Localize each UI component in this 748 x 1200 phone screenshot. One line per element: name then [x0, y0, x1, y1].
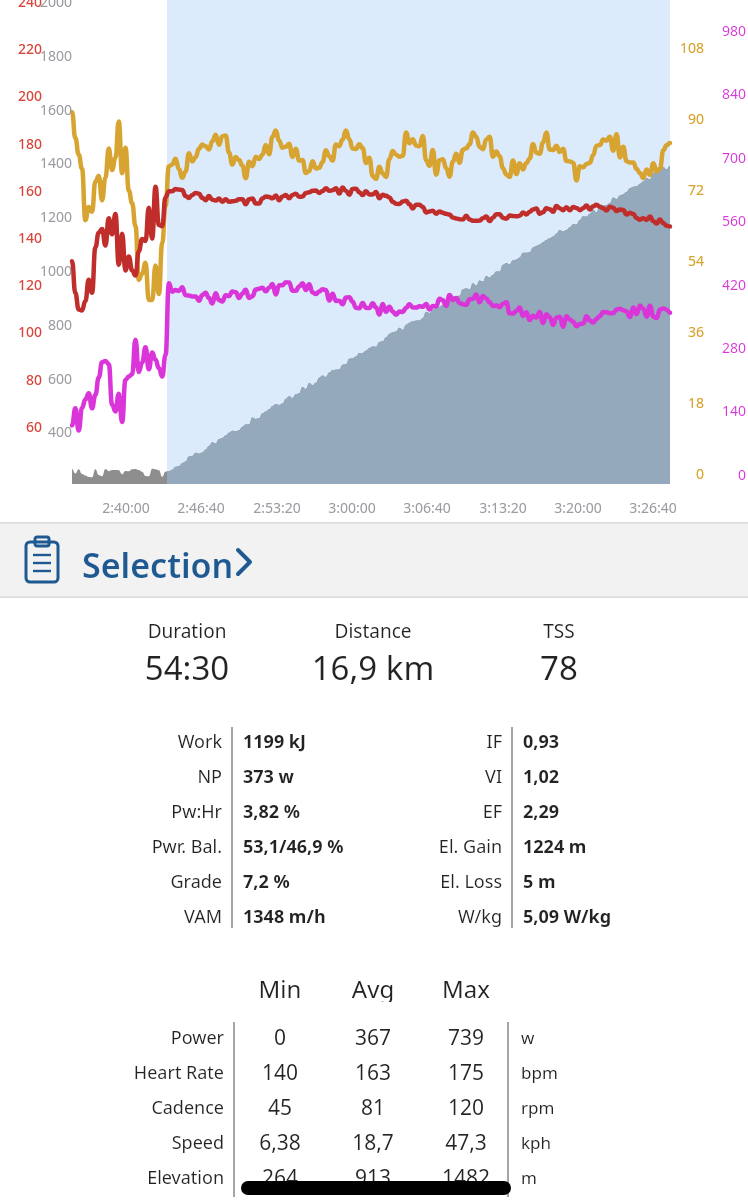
staticText: 200 [4, 86, 42, 106]
staticText: 980 [706, 21, 746, 41]
staticText: Elevation [60, 1165, 224, 1193]
staticText: 2,29 [523, 799, 560, 824]
staticText: Pwr. Bal. [80, 834, 222, 860]
staticText: Cadence [60, 1095, 224, 1123]
staticText: 3:20:00 [538, 498, 618, 518]
staticText: 0 [230, 1023, 330, 1053]
staticText: 140 [4, 228, 42, 248]
staticText: 1348 m/h [243, 904, 326, 929]
staticText: 54:30 [77, 645, 297, 691]
staticText: 3:06:40 [387, 498, 467, 518]
staticText: Min [220, 972, 340, 1002]
staticText: 140 [230, 1058, 330, 1088]
staticText: 18 [672, 393, 704, 413]
staticText: El. Gain [370, 834, 502, 860]
staticText: 180 [4, 134, 42, 154]
staticText: 373 w [243, 764, 294, 789]
staticText: VI [370, 764, 502, 790]
staticText: 739 [416, 1023, 516, 1053]
staticText: 2000 [30, 0, 72, 12]
staticText: 240 [4, 0, 42, 12]
staticText: Max [406, 972, 526, 1002]
staticText: TSS [449, 618, 669, 644]
staticText: Heart Rate [60, 1060, 224, 1088]
staticText: 16,9 km [263, 645, 483, 691]
staticText: m [521, 1166, 537, 1189]
staticText: 0 [672, 464, 704, 484]
staticText: 2:53:20 [237, 498, 317, 518]
staticText: 81 [323, 1093, 423, 1123]
staticText: 160 [4, 181, 42, 201]
staticText: 175 [416, 1058, 516, 1088]
staticText: El. Loss [370, 869, 502, 895]
staticText: 100 [4, 322, 42, 342]
staticText: 78 [449, 645, 669, 691]
staticText: 400 [30, 422, 72, 442]
staticText: 1224 m [523, 834, 587, 859]
staticText: 108 [672, 38, 704, 58]
staticText: 0,93 [523, 729, 560, 754]
staticText: 220 [4, 39, 42, 59]
staticText: 60 [4, 417, 42, 437]
staticText: IF [370, 729, 502, 755]
staticText: Avg [313, 972, 433, 1002]
staticText: 53,1/46,9 % [243, 834, 344, 859]
staticText: 600 [30, 369, 72, 389]
staticText: 140 [706, 401, 746, 421]
staticText: 54 [672, 251, 704, 271]
staticText: 700 [706, 148, 746, 168]
staticText: 120 [4, 275, 42, 295]
staticText: kph [521, 1131, 552, 1154]
staticText: 90 [672, 109, 704, 129]
staticText: NP [80, 764, 222, 790]
staticText: Power [60, 1025, 224, 1053]
staticText: 3:00:00 [312, 498, 392, 518]
staticText: 1600 [30, 100, 72, 120]
staticText: 5,09 W/kg [523, 904, 612, 929]
staticText: 1000 [30, 261, 72, 281]
staticText: 5 m [523, 869, 556, 894]
staticText: Selection [82, 542, 234, 588]
staticText: 264 [230, 1163, 330, 1193]
staticText: w [521, 1026, 535, 1049]
staticText: 1400 [30, 153, 72, 173]
staticText: bpm [521, 1061, 558, 1084]
staticText: rpm [521, 1096, 555, 1119]
staticText: 120 [416, 1093, 516, 1123]
staticText: 800 [30, 315, 72, 335]
staticText: 80 [4, 370, 42, 390]
staticText: Work [80, 729, 222, 755]
staticText: 6,38 [230, 1128, 330, 1158]
staticText: Distance [263, 618, 483, 644]
staticText: 45 [230, 1093, 330, 1123]
staticText: W/kg [370, 904, 502, 930]
staticText: EF [370, 799, 502, 825]
staticText: 560 [706, 211, 746, 231]
staticText: 3,82 % [243, 799, 300, 824]
staticText: 1199 kJ [243, 729, 306, 754]
staticText: 1,02 [523, 764, 560, 789]
staticText: 420 [706, 275, 746, 295]
staticText: 2:40:00 [86, 498, 166, 518]
staticText: Speed [60, 1130, 224, 1158]
staticText: 1800 [30, 46, 72, 66]
button[interactable]: Selection [0, 522, 748, 598]
staticText: 47,3 [416, 1128, 516, 1158]
staticText: Duration [77, 618, 297, 644]
staticText: 840 [706, 84, 746, 104]
staticText: Grade [80, 869, 222, 895]
staticText: 367 [323, 1023, 423, 1053]
staticText: 1200 [30, 207, 72, 227]
staticText: 1482 [416, 1163, 516, 1193]
staticText: 36 [672, 322, 704, 342]
staticText: 72 [672, 180, 704, 200]
staticText: 0 [706, 465, 746, 485]
staticText: 3:26:40 [613, 498, 693, 518]
staticText: 913 [323, 1163, 423, 1193]
staticText: 3:13:20 [463, 498, 543, 518]
staticText: 163 [323, 1058, 423, 1088]
staticText: 2:46:40 [161, 498, 241, 518]
staticText: 18,7 [323, 1128, 423, 1158]
staticText: 280 [706, 338, 746, 358]
staticText: VAM [80, 904, 222, 930]
